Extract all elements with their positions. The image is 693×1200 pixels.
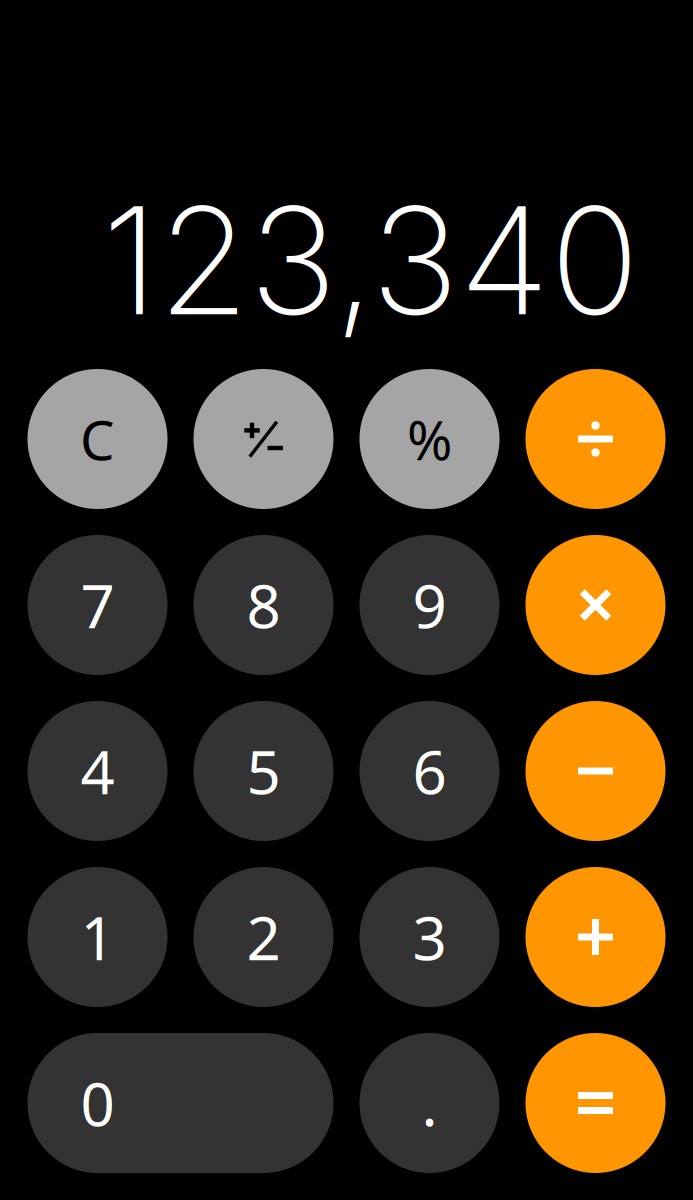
button[interactable]: Multiply: [525, 535, 665, 675]
staticText: .: [421, 1063, 437, 1143]
button[interactable]: Add: [525, 867, 665, 1007]
staticText: 5: [246, 731, 280, 811]
staticText: 9: [412, 565, 446, 645]
staticText: 123,340: [102, 171, 639, 350]
button[interactable]: Divide: [525, 369, 665, 509]
button[interactable]: 6: [359, 701, 499, 841]
button[interactable]: 4: [27, 701, 167, 841]
staticText: 8: [246, 565, 280, 645]
staticText: %: [407, 403, 452, 475]
staticText: 0: [80, 1063, 114, 1143]
button[interactable]: 8: [193, 535, 333, 675]
staticText: 3: [412, 897, 446, 977]
button[interactable]: .: [359, 1033, 499, 1173]
staticText: 4: [80, 731, 114, 811]
button[interactable]: Equals: [525, 1033, 665, 1173]
staticText: 1: [80, 897, 114, 977]
staticText: C: [80, 403, 115, 475]
button[interactable]: Subtract: [525, 701, 665, 841]
button[interactable]: 1: [27, 867, 167, 1007]
button[interactable]: 2: [193, 867, 333, 1007]
button[interactable]: 3: [359, 867, 499, 1007]
staticText: 7: [80, 565, 114, 645]
button[interactable]: 0: [27, 1033, 333, 1173]
staticText: 2: [246, 897, 280, 977]
button[interactable]: %: [359, 369, 499, 509]
button[interactable]: 9: [359, 535, 499, 675]
staticText: 6: [412, 731, 446, 811]
button[interactable]: 5: [193, 701, 333, 841]
button[interactable]: Plus minus: [193, 369, 333, 509]
button[interactable]: C: [27, 369, 167, 509]
button[interactable]: 7: [27, 535, 167, 675]
